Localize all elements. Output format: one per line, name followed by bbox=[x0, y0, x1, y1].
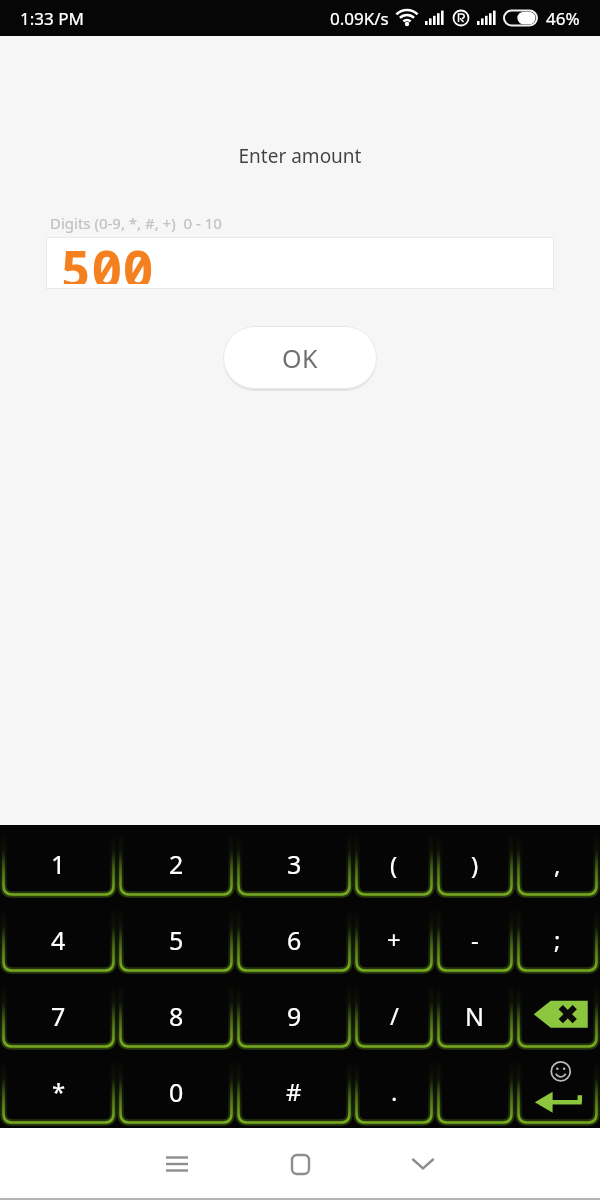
staticText: - bbox=[471, 923, 479, 956]
staticText: 6 bbox=[287, 923, 302, 957]
staticText: 2 bbox=[169, 847, 184, 881]
button[interactable]: 8 bbox=[119, 982, 233, 1049]
button[interactable]: 7 bbox=[2, 982, 115, 1049]
button[interactable] bbox=[153, 1140, 201, 1188]
staticText: . bbox=[391, 1075, 398, 1108]
button[interactable]: OK bbox=[223, 326, 377, 389]
staticText: / bbox=[390, 999, 399, 1032]
staticText: 3 bbox=[287, 847, 302, 881]
staticText: N bbox=[465, 999, 485, 1033]
staticText: Enter amount bbox=[0, 143, 600, 169]
button[interactable]: # bbox=[237, 1058, 351, 1125]
button[interactable] bbox=[437, 1058, 513, 1125]
button[interactable]: 0 bbox=[119, 1058, 233, 1125]
button[interactable]: / bbox=[355, 982, 433, 1049]
button[interactable] bbox=[517, 1058, 598, 1125]
staticText: 8 bbox=[169, 999, 184, 1033]
button[interactable]: . bbox=[355, 1058, 433, 1125]
staticText: 5 bbox=[169, 923, 184, 957]
staticText: OK bbox=[282, 341, 319, 375]
button[interactable]: 9 bbox=[237, 982, 351, 1049]
staticText: , bbox=[554, 848, 561, 881]
staticText: ; bbox=[554, 923, 561, 956]
staticText: 7 bbox=[51, 999, 66, 1033]
staticText: * bbox=[52, 1075, 66, 1108]
staticText: 46% bbox=[546, 7, 580, 30]
staticText: 0 bbox=[169, 1075, 184, 1109]
staticText: + bbox=[387, 923, 401, 956]
staticText: ( bbox=[390, 848, 398, 881]
button[interactable]: - bbox=[437, 906, 513, 973]
button[interactable] bbox=[276, 1140, 324, 1188]
staticText: # bbox=[286, 1075, 302, 1108]
button[interactable]: N bbox=[437, 982, 513, 1049]
button[interactable] bbox=[517, 982, 598, 1049]
button[interactable] bbox=[399, 1140, 447, 1188]
staticText: 0.09K/s bbox=[330, 7, 389, 30]
button[interactable]: 1 bbox=[2, 831, 115, 897]
button[interactable]: 6 bbox=[237, 906, 351, 973]
button[interactable]: 2 bbox=[119, 831, 233, 897]
button[interactable]: 500 bbox=[46, 237, 554, 289]
button[interactable]: ( bbox=[355, 831, 433, 897]
button[interactable]: + bbox=[355, 906, 433, 973]
staticText: 500 bbox=[60, 232, 154, 284]
button[interactable]: 4 bbox=[2, 906, 115, 973]
staticText: 4 bbox=[51, 923, 66, 957]
staticText: 9 bbox=[287, 999, 302, 1033]
button[interactable]: , bbox=[517, 831, 598, 897]
button[interactable]: ) bbox=[437, 831, 513, 897]
staticText: 1 bbox=[51, 847, 66, 881]
button[interactable]: 5 bbox=[119, 906, 233, 973]
button[interactable]: 3 bbox=[237, 831, 351, 897]
staticText: Digits (0-9, *, #, +) 0 - 10 bbox=[50, 213, 222, 233]
button[interactable]: ; bbox=[517, 906, 598, 973]
button[interactable]: * bbox=[2, 1058, 115, 1125]
staticText: ) bbox=[471, 848, 479, 881]
staticText: 1:33 PM bbox=[20, 7, 84, 30]
